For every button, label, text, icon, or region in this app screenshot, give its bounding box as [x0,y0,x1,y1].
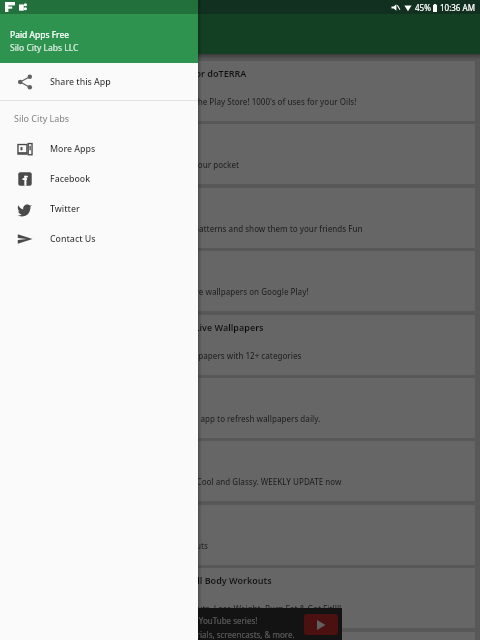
button[interactable]: More Apps [0,134,198,164]
button[interactable]: Wallpapers [5,378,475,438]
staticText: Create amazing patterns and show them to… [132,223,363,234]
staticText: 10 Minute Workouts, Lose Weight, Burn Fa… [132,603,342,614]
staticText: More Apps [50,143,96,155]
staticText: Facebook [50,173,91,185]
staticText: A bright light in your pocket [132,159,240,170]
staticText: 10:36 AM [440,2,475,13]
staticText: A 10 Minute Full Body Workouts [132,574,272,586]
other: Contact Us [0,231,50,247]
button[interactable]: Workouts [5,505,475,565]
button[interactable]: Contact Us [0,224,198,254]
staticText: Paid Apps Free [10,29,70,41]
button[interactable]: A 10 Minute Full Body Workouts [5,568,475,628]
staticText: Sleep Sounds Relax [132,638,217,640]
button[interactable]: Share this App [0,63,198,100]
staticText: Set a timer inside app to refresh wallpa… [132,413,321,424]
staticText: Amazing New Live Wallpapers [132,321,264,333]
staticText: Beautiful, Clean, Cool and Glassy. WEEKL… [132,476,342,487]
staticText: New YouTube series! [180,615,258,626]
button[interactable]: Amazing New Live Wallpapers [5,315,475,375]
other: More Apps [0,141,50,157]
staticText: Your daily workouts [132,540,208,551]
button[interactable]: Essential Oils for doTERRA [5,61,475,121]
button[interactable]: Flashlight [5,124,475,184]
staticText: Contact Us [50,233,96,245]
staticText: Twitter [50,203,80,215]
other: Facebook [0,171,50,187]
button[interactable]: Glass LWP [5,441,475,501]
other: Twitter [0,201,50,217]
staticText: Silo City Labs [14,112,70,124]
staticText: Tutorials, screencasts, & more. [180,629,295,640]
button[interactable]: Twitter [0,194,198,224]
button[interactable]: Facebook [0,164,198,194]
staticText: Silo City Labs LLC [10,42,79,54]
button[interactable]: Sleep Sounds Relax [5,632,475,640]
staticText: 45% [415,2,431,13]
button[interactable]: Kaleidoscope [5,188,475,248]
staticText: 1000's of live wallpapers with 12+ categ… [132,350,302,361]
staticText: Best oils app on the Play Store! 1000's … [132,96,357,107]
staticText: Share this App [50,76,111,88]
staticText: Essential Oils for doTERRA [132,67,247,79]
button[interactable]: New YouTube series! [176,608,342,640]
button[interactable]: Backgrounds [5,251,475,311]
staticText: The best set of live wallpapers on Googl… [132,286,309,297]
